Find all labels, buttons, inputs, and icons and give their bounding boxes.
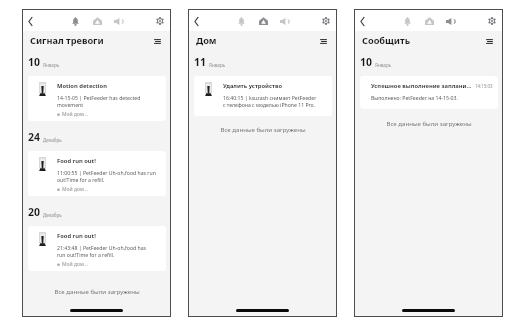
button[interactable]: Motion detection: [28, 76, 166, 121]
button[interactable]: Sound: [278, 15, 290, 27]
button[interactable]: Notifications: [235, 15, 247, 27]
button[interactable]: Food run out!: [28, 226, 166, 271]
staticText: Сигнал тревоги: [30, 34, 104, 47]
button[interactable]: Back: [24, 15, 36, 27]
staticText: Удалить устройство: [223, 82, 283, 90]
staticText: Все данные были загружены: [28, 287, 166, 295]
staticText: Food run out!: [57, 157, 96, 165]
button[interactable]: Food run out!: [28, 151, 166, 196]
button[interactable]: Home: [423, 15, 435, 27]
button[interactable]: Menu: [152, 36, 163, 47]
staticText: Motion detection: [57, 82, 107, 90]
staticText: Мой дом ..: [62, 186, 88, 193]
staticText: Выполнено: PetFeeder на 14-15-03.: [371, 94, 458, 101]
button[interactable]: Notifications: [401, 15, 413, 27]
staticText: Сообщить: [362, 34, 411, 47]
staticText: Мой дом ..: [62, 261, 88, 268]
button[interactable]: Back: [190, 15, 202, 27]
button[interactable]: Menu: [318, 36, 329, 47]
staticText: Food run out!: [57, 232, 96, 240]
staticText: 10: [28, 55, 41, 69]
staticText: 24: [28, 130, 41, 144]
staticText: Все данные были загружены: [194, 125, 332, 133]
staticText: 14-15-05 | PetFeeder has detected moveme…: [57, 94, 141, 108]
button[interactable]: Settings: [486, 15, 498, 27]
staticText: Декабрь: [43, 137, 62, 143]
button[interactable]: Settings: [320, 15, 332, 27]
staticText: Мой дом ..: [62, 111, 88, 118]
staticText: Все данные были загружены: [360, 119, 498, 127]
button[interactable]: Удалить устройство: [194, 76, 332, 116]
staticText: Январь: [209, 62, 226, 68]
button[interactable]: Notifications: [69, 15, 81, 27]
button[interactable]: Menu: [484, 36, 495, 47]
staticText: Успешное выполнение запланир...: [371, 82, 472, 90]
staticText: Январь: [375, 62, 392, 68]
staticText: 21:43:48 | PetFeeder Uh-oh,food has run …: [57, 244, 147, 258]
button[interactable]: Sound: [112, 15, 124, 27]
button[interactable]: Успешное выполнение запланир...: [360, 76, 498, 109]
staticText: 16:40:15 | ksuzash снимает PetFeeder с т…: [223, 94, 317, 108]
staticText: 10: [360, 55, 373, 69]
button[interactable]: Sound: [444, 15, 456, 27]
button[interactable]: Home: [91, 15, 103, 27]
staticText: Январь: [43, 62, 60, 68]
staticText: 20: [28, 205, 41, 219]
staticText: Декабрь: [43, 212, 62, 218]
staticText: 14:15:03: [475, 83, 493, 89]
button[interactable]: Home: [257, 15, 269, 27]
button[interactable]: Back: [356, 15, 368, 27]
button[interactable]: Settings: [154, 15, 166, 27]
staticText: 11: [194, 55, 207, 69]
staticText: 11:00:55 | PetFeeder Uh-oh,food has run …: [57, 169, 156, 183]
staticText: Дом: [196, 34, 217, 47]
